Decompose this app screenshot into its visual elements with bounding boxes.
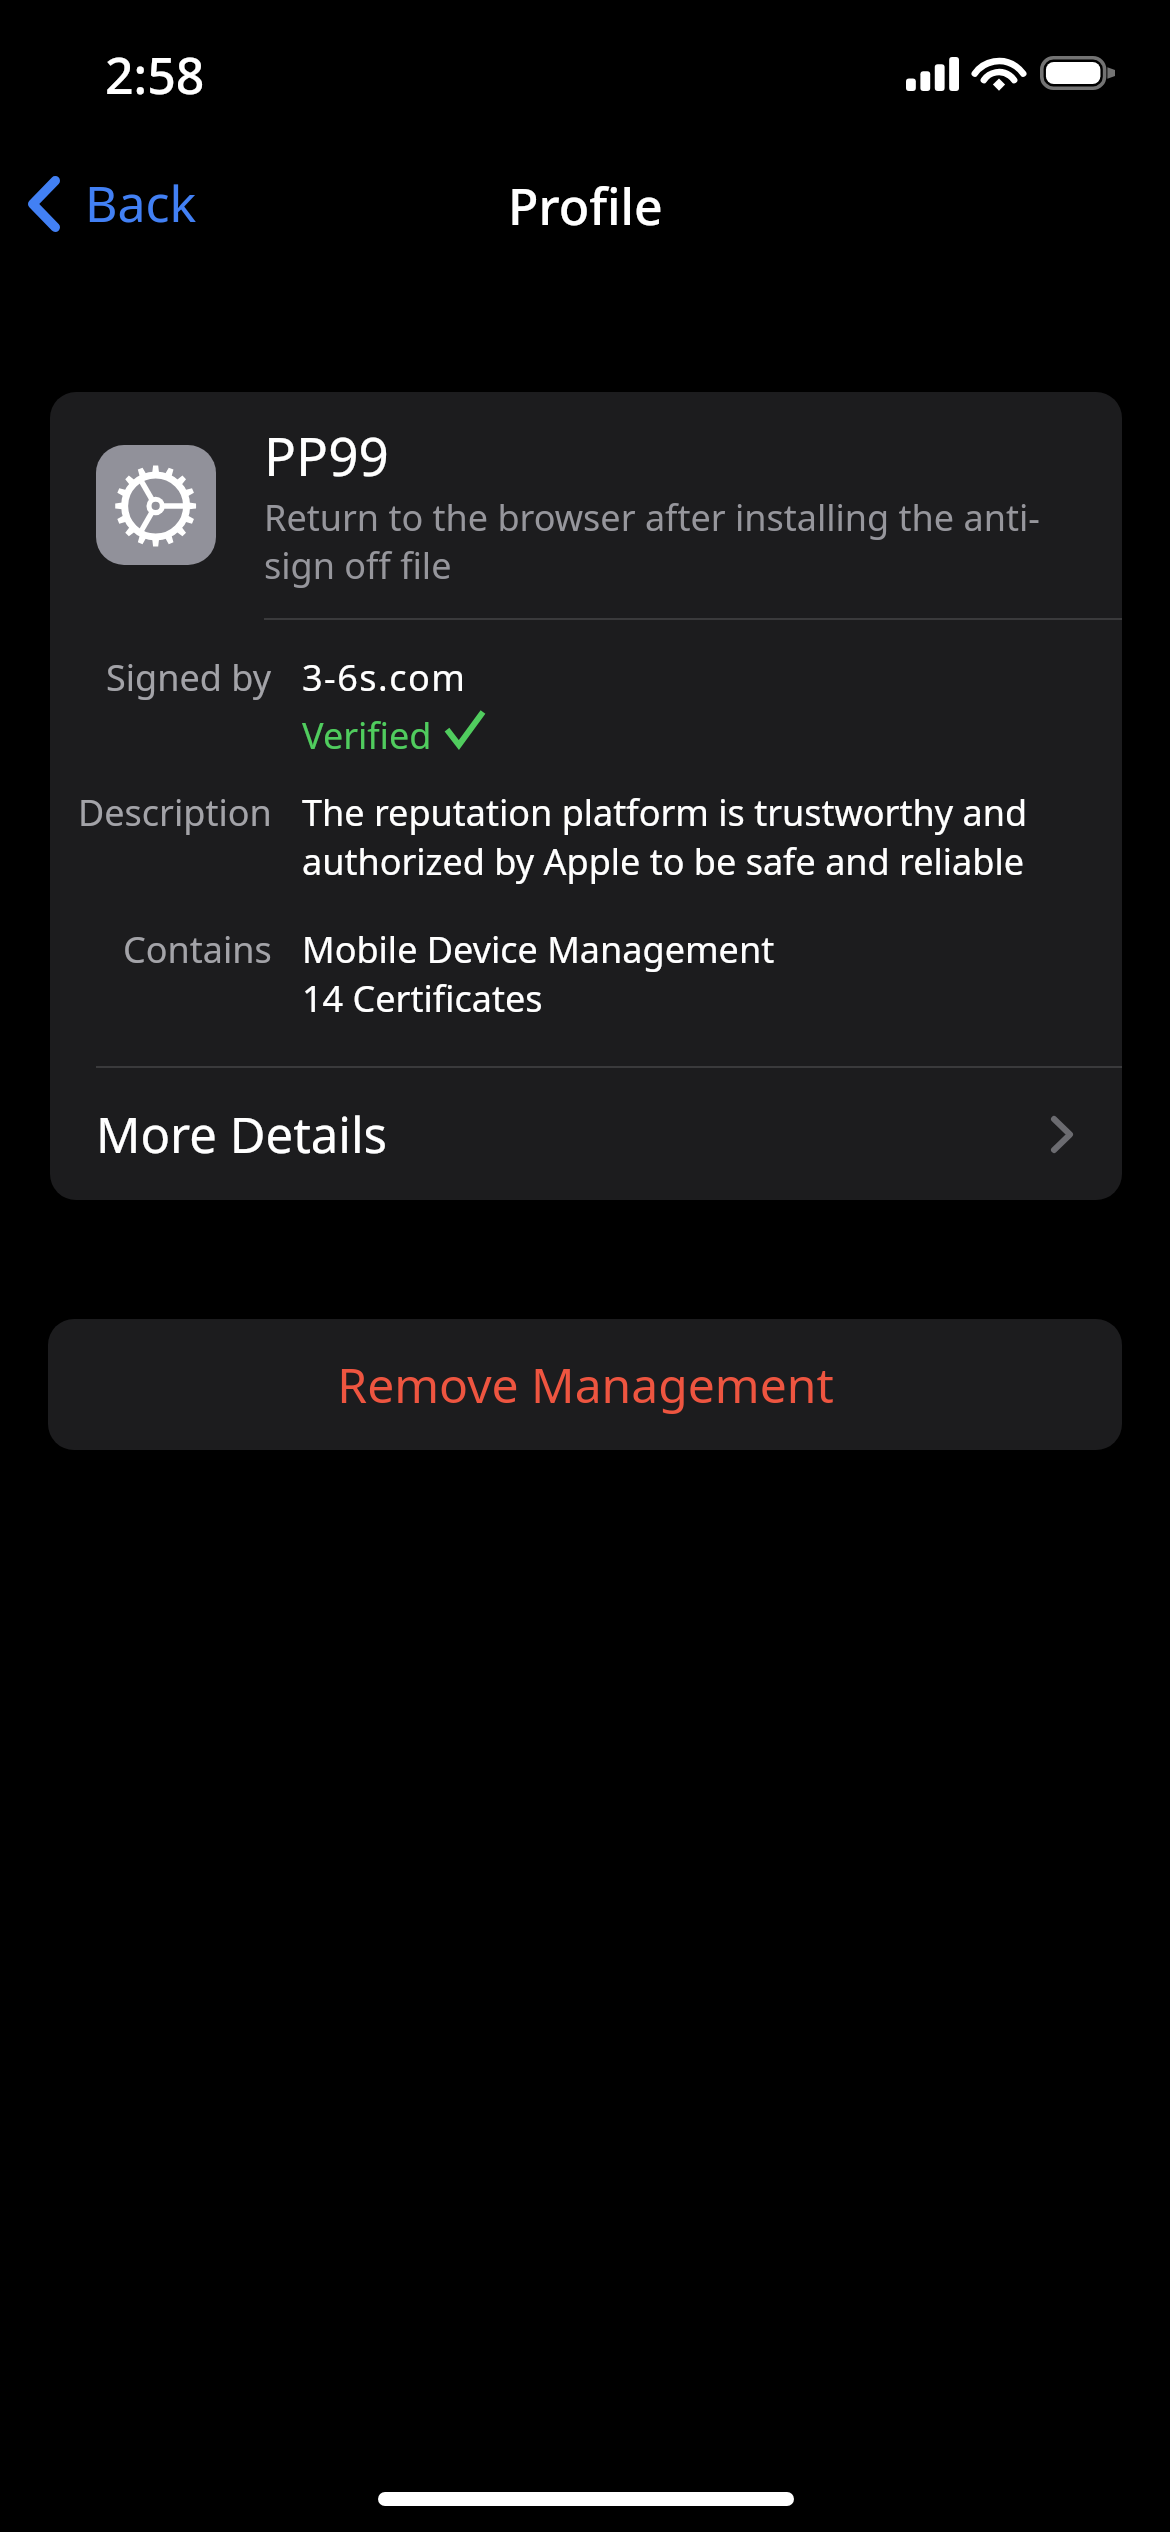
other: More Details	[1051, 1116, 1073, 1153]
staticText: The reputation platform is trustworthy a…	[302, 788, 1042, 885]
button[interactable]: Remove Management	[48, 1319, 1122, 1450]
staticText: Mobile Device Management 14 Certificates	[302, 925, 775, 1022]
staticText: Remove Management	[337, 1352, 834, 1417]
staticText: Description	[78, 788, 272, 837]
staticText: Return to the browser after installing t…	[264, 493, 1054, 589]
staticText: PP99	[264, 419, 389, 491]
staticText: More Details	[96, 1101, 388, 1168]
button[interactable]: More Details	[50, 1068, 1122, 1200]
staticText: Signed by	[106, 653, 272, 702]
staticText: Contains	[123, 925, 272, 974]
staticText: Verified	[302, 711, 432, 760]
staticText: 3-6s.com	[302, 653, 467, 702]
staticText: 2:58	[105, 41, 205, 109]
staticText: Back	[85, 169, 197, 237]
staticText: Profile	[508, 172, 663, 240]
button[interactable]: Back	[28, 170, 197, 238]
